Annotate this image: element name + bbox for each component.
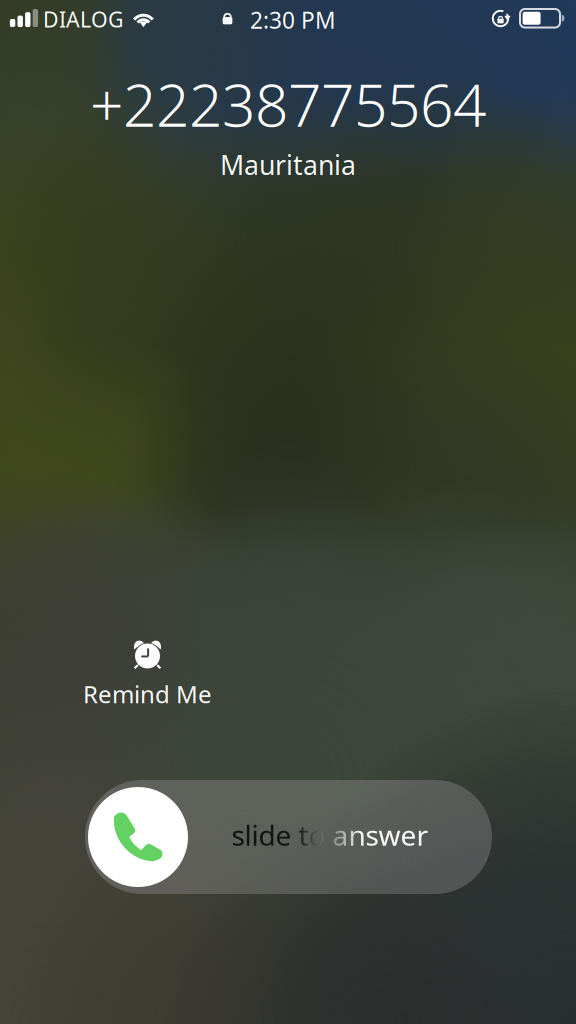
staticText: Remind Me [83,678,212,710]
staticText: DIALOG [43,5,124,33]
staticText: Mauritania [220,147,356,182]
staticText: +22238775564 [90,65,486,143]
staticText: 2:30 PM [250,5,336,35]
button[interactable]: Remind Me [60,633,235,715]
button[interactable] [85,780,492,894]
